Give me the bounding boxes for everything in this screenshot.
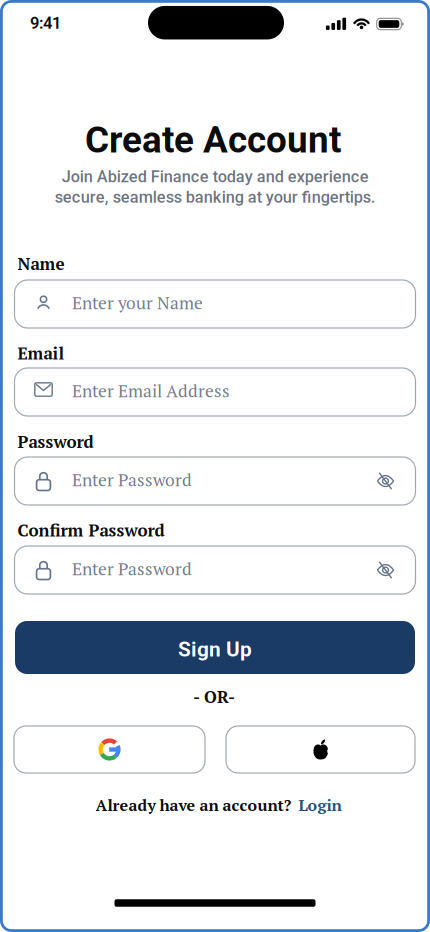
- button[interactable]: Enter Email Address: [14, 368, 415, 416]
- button[interactable]: Sign up with Google: [14, 726, 205, 773]
- staticText: Confirm Password: [17, 519, 164, 541]
- staticText: Name: [17, 252, 64, 275]
- staticText: Already have an account?: [95, 794, 291, 816]
- button[interactable]: Sign Up: [15, 621, 415, 674]
- staticText: Enter Email Address: [72, 379, 230, 402]
- staticText: Password: [17, 430, 93, 453]
- staticText: Enter Password: [72, 468, 192, 491]
- button[interactable]: Login: [298, 794, 341, 816]
- staticText: Create Account: [85, 118, 341, 161]
- staticText: 9:41: [30, 13, 61, 33]
- button[interactable]: Enter Password: [14, 457, 415, 505]
- staticText: Enter Password: [72, 557, 192, 580]
- staticText: Join Abized Finance today and experience…: [54, 167, 375, 207]
- button[interactable]: Sign up with Apple: [226, 726, 415, 773]
- staticText: Enter your Name: [72, 291, 203, 314]
- staticText: Sign Up: [178, 637, 252, 662]
- button[interactable]: Enter Password: [14, 546, 415, 594]
- staticText: - OR-: [193, 685, 235, 708]
- staticText: Login: [298, 794, 341, 816]
- button[interactable]: Enter your Name: [14, 280, 415, 328]
- staticText: Email: [17, 342, 64, 364]
